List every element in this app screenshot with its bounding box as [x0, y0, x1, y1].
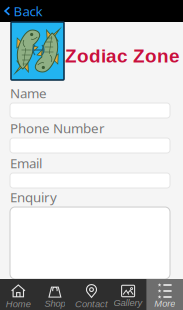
staticText: Home	[6, 299, 31, 309]
staticText: Contact	[75, 299, 108, 309]
staticText: Zodiac Zone	[65, 45, 180, 67]
staticText: Shop	[44, 298, 65, 309]
button[interactable]: Gallery	[110, 279, 146, 310]
staticText: More	[154, 298, 175, 309]
staticText: Enquiry	[10, 188, 57, 206]
staticText: Email	[10, 154, 42, 172]
button[interactable]: Contact	[73, 279, 110, 310]
staticText: Phone Number	[10, 119, 105, 137]
staticText: Back	[13, 2, 42, 20]
staticText: Gallery	[114, 297, 143, 308]
button[interactable]: Home	[0, 279, 37, 310]
button[interactable]: Shop	[37, 279, 73, 310]
button[interactable]: More	[146, 279, 183, 310]
staticText: Name	[10, 84, 47, 102]
button[interactable]: Back	[0, 0, 50, 22]
